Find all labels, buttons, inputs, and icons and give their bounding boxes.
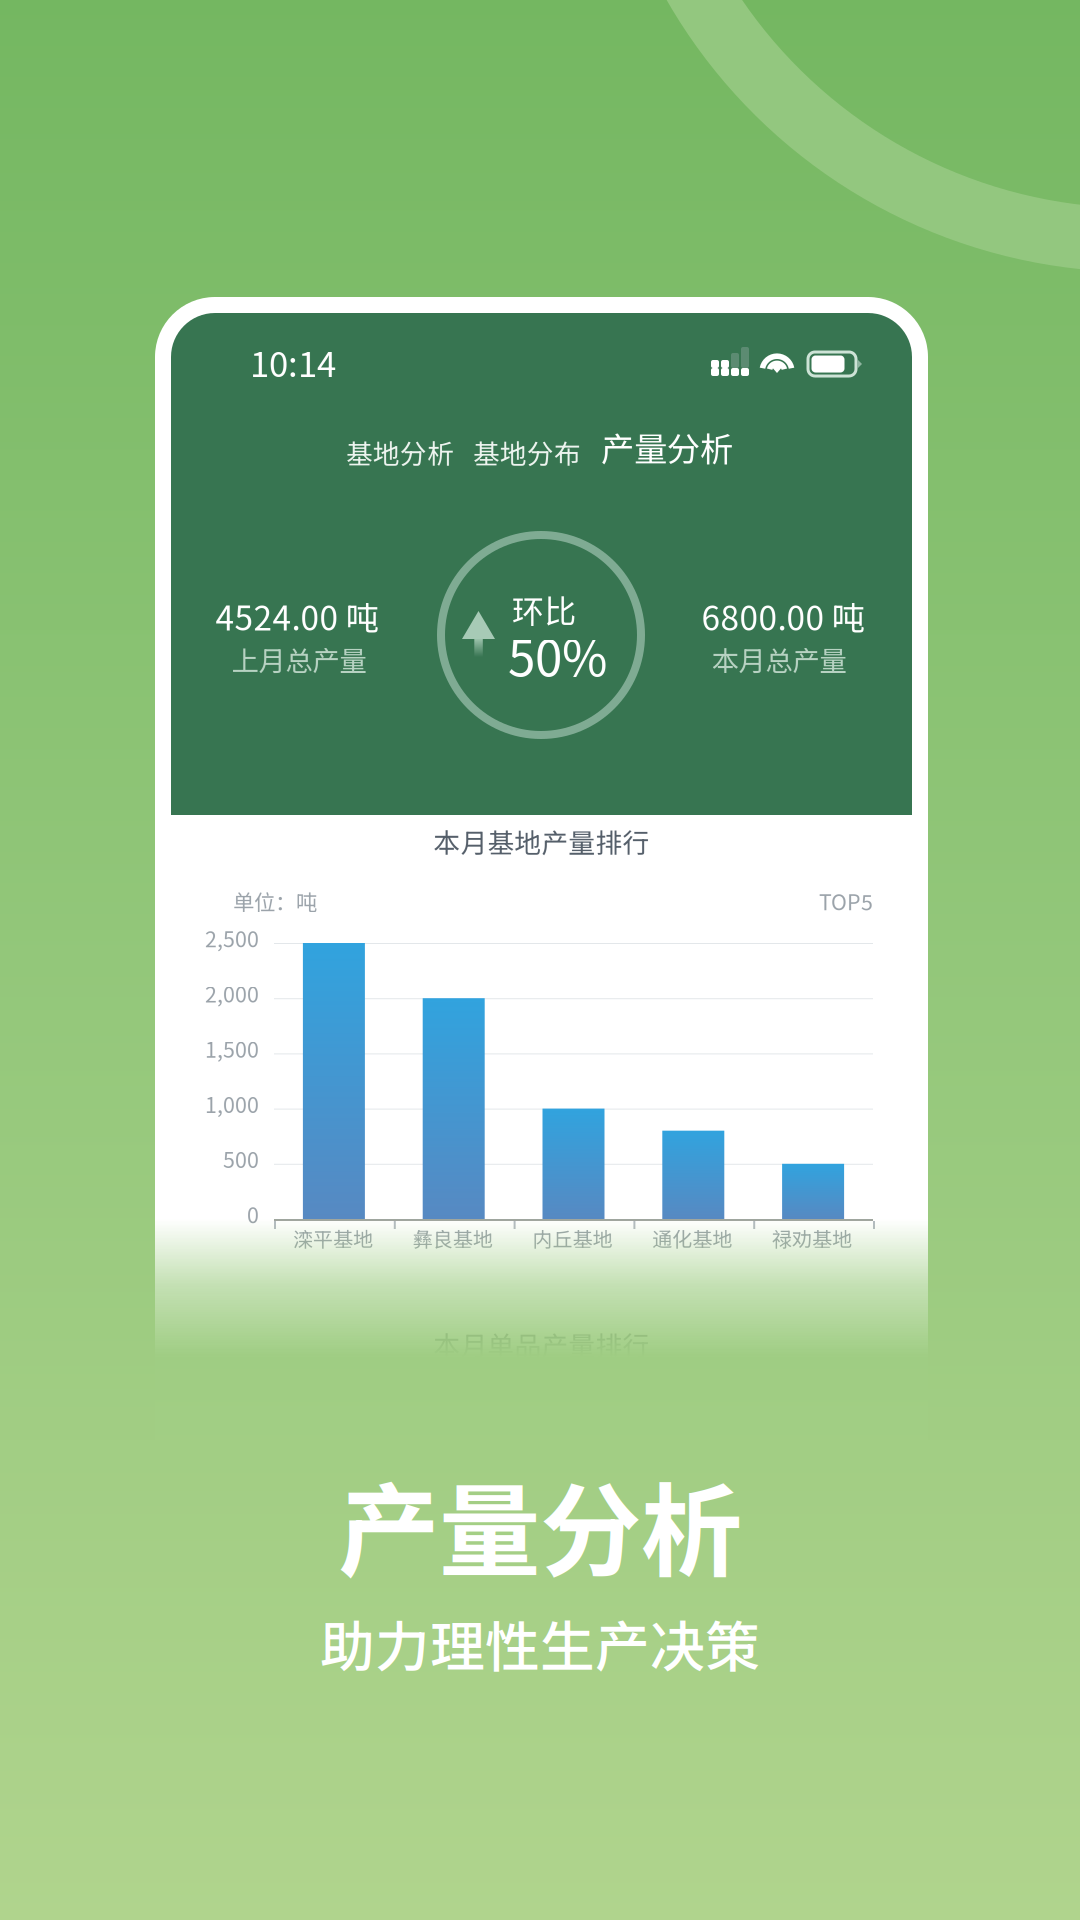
staticText: 1,500 [205, 1033, 259, 1064]
staticText: 禄劝基地 [772, 1223, 852, 1252]
staticText: 滦平基地 [293, 1223, 373, 1252]
staticText: 彝良基地 [413, 1223, 493, 1252]
staticText: 50% [508, 619, 607, 691]
staticText: 单位：吨 [233, 886, 317, 916]
staticText: 1,000 [205, 1088, 259, 1119]
button[interactable]: 产量分析 [600, 425, 734, 469]
staticText: 0 [247, 1199, 259, 1229]
staticText: 内丘基地 [532, 1223, 612, 1252]
staticText: 产量分析 [601, 423, 733, 471]
staticText: 助力理性生产决策 [320, 1603, 760, 1683]
staticText: 通化基地 [652, 1223, 732, 1252]
staticText: 4524.00 吨 [215, 592, 378, 640]
staticText: 产量分析 [338, 1451, 742, 1597]
staticText: 6800.00 吨 [701, 592, 864, 640]
staticText: 本月总产量 [711, 639, 846, 679]
staticText: 基地分析 [346, 433, 454, 471]
staticText: 基地分布 [473, 433, 581, 471]
staticText: 环比 [512, 586, 576, 632]
staticText: 500 [223, 1143, 259, 1174]
staticText: 本月单品产量排行 [433, 1325, 649, 1363]
button[interactable]: 基地分布 [473, 430, 581, 474]
button[interactable]: 基地分析 [346, 430, 454, 474]
staticText: 10:14 [250, 337, 336, 387]
staticText: 本月基地产量排行 [433, 822, 649, 860]
staticText: 上月总产量 [231, 639, 366, 679]
staticText: TOP5 [819, 886, 873, 916]
staticText: 2,000 [205, 978, 259, 1009]
staticText: 2,500 [205, 923, 259, 953]
